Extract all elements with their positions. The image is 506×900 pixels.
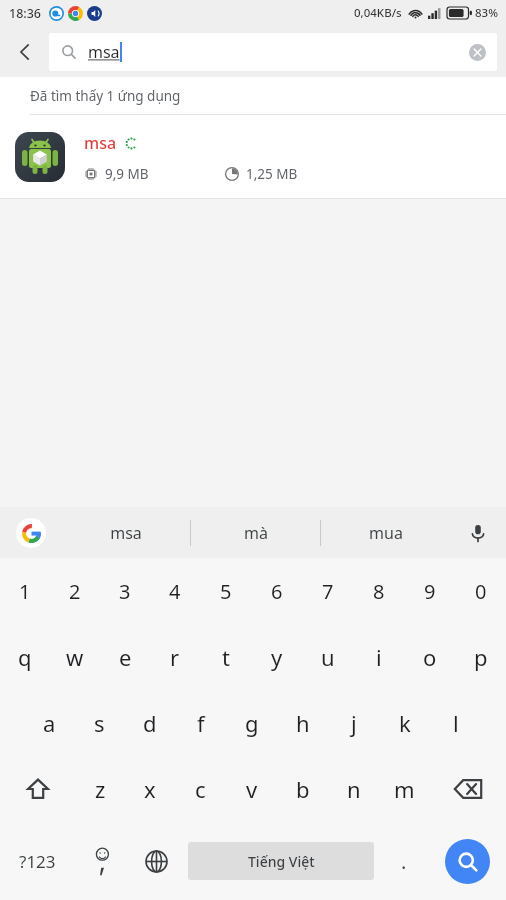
button[interactable]: 8 xyxy=(353,558,404,624)
staticText: 83% xyxy=(475,5,498,21)
button[interactable]: Search xyxy=(445,839,490,884)
staticText: msa xyxy=(110,522,142,544)
button[interactable]: 9 xyxy=(404,558,455,624)
button[interactable]: w xyxy=(50,624,100,690)
button[interactable]: k xyxy=(379,690,430,756)
staticText: a xyxy=(43,708,56,738)
staticText: 9 xyxy=(424,578,436,605)
button[interactable]: v xyxy=(226,756,277,822)
staticText: m xyxy=(394,774,415,804)
button[interactable]: s xyxy=(74,690,124,756)
button[interactable]: l xyxy=(430,690,481,756)
staticText: p xyxy=(474,642,488,672)
staticText: mà xyxy=(244,522,268,544)
staticText: 0,04KB/s xyxy=(354,5,402,21)
staticText: Đã tìm thấy 1 ứng dụng xyxy=(30,87,181,105)
button[interactable]: Emoji and comma xyxy=(75,822,129,900)
button[interactable]: p xyxy=(455,624,506,690)
staticText: u xyxy=(321,642,335,672)
staticText: Tiếng Việt xyxy=(248,852,315,871)
staticText: 18:36 xyxy=(9,5,42,22)
staticText: y xyxy=(271,642,283,672)
button[interactable]: e xyxy=(100,624,150,690)
staticText: 5 xyxy=(220,578,232,605)
button[interactable]: 4 xyxy=(150,558,200,624)
button[interactable]: u xyxy=(302,624,353,690)
button[interactable]: . xyxy=(379,822,428,900)
staticText: 9,9 MB xyxy=(105,165,149,183)
button[interactable]: b xyxy=(277,756,328,822)
staticText: 4 xyxy=(169,578,181,605)
button[interactable]: m xyxy=(379,756,430,822)
button[interactable]: 1 xyxy=(0,558,50,624)
button[interactable]: c xyxy=(175,756,226,822)
button[interactable]: 2 xyxy=(50,558,100,624)
button[interactable]: d xyxy=(124,690,175,756)
button[interactable]: g xyxy=(226,690,277,756)
staticText: q xyxy=(18,642,32,672)
button[interactable]: r xyxy=(150,624,200,690)
staticText: 0 xyxy=(475,578,487,605)
staticText: k xyxy=(399,708,411,738)
button[interactable]: z xyxy=(75,756,125,822)
button[interactable]: f xyxy=(175,690,226,756)
button[interactable]: Change language xyxy=(129,822,183,900)
button[interactable]: ?123 xyxy=(0,822,75,900)
staticText: d xyxy=(143,708,157,738)
button[interactable]: t xyxy=(200,624,251,690)
staticText: . xyxy=(401,848,407,875)
button[interactable]: Tiếng Việt xyxy=(188,842,374,880)
button[interactable]: n xyxy=(328,756,379,822)
button[interactable]: Backspace xyxy=(430,756,506,822)
staticText: 8 xyxy=(373,578,385,605)
staticText: 7 xyxy=(322,578,334,605)
staticText: r xyxy=(170,642,180,672)
staticText: 3 xyxy=(119,578,131,605)
button[interactable]: Google Search xyxy=(0,507,62,558)
button[interactable]: a xyxy=(24,690,74,756)
staticText: h xyxy=(296,708,310,738)
button[interactable]: 7 xyxy=(302,558,353,624)
button[interactable]: mà xyxy=(191,507,320,558)
button[interactable]: h xyxy=(277,690,328,756)
staticText: i xyxy=(376,642,382,672)
staticText: msa xyxy=(88,41,120,63)
button[interactable]: o xyxy=(404,624,455,690)
staticText: mua xyxy=(369,522,403,544)
staticText: c xyxy=(195,774,206,804)
staticText: g xyxy=(245,708,259,738)
staticText: ?123 xyxy=(19,850,56,873)
button[interactable]: Clear text xyxy=(460,35,494,69)
staticText: t xyxy=(222,642,230,672)
button[interactable]: msa xyxy=(62,507,190,558)
staticText: o xyxy=(423,642,437,672)
button[interactable]: mua xyxy=(321,507,450,558)
button[interactable]: x xyxy=(125,756,175,822)
button[interactable]: msa xyxy=(0,115,506,199)
button[interactable]: i xyxy=(353,624,404,690)
button[interactable]: 6 xyxy=(251,558,302,624)
button[interactable]: Shift xyxy=(0,756,75,822)
staticText: f xyxy=(197,708,205,738)
button[interactable]: Voice input xyxy=(450,507,506,558)
button[interactable]: q xyxy=(0,624,50,690)
staticText: s xyxy=(94,708,105,738)
button[interactable]: y xyxy=(251,624,302,690)
button[interactable]: j xyxy=(328,690,379,756)
staticText: b xyxy=(296,774,310,804)
staticText: e xyxy=(119,642,132,672)
button[interactable]: Back xyxy=(0,26,49,77)
staticText: n xyxy=(347,774,361,804)
button[interactable]: 5 xyxy=(200,558,251,624)
staticText: 1,25 MB xyxy=(246,165,298,183)
staticText: l xyxy=(453,708,459,738)
button[interactable]: 3 xyxy=(100,558,150,624)
staticText: j xyxy=(351,708,357,738)
staticText: 6 xyxy=(271,578,283,605)
button[interactable]: msa xyxy=(49,33,497,71)
staticText: msa xyxy=(84,132,117,154)
staticText: 2 xyxy=(69,578,81,605)
button[interactable]: 0 xyxy=(455,558,506,624)
staticText: 1 xyxy=(19,578,31,605)
staticText: x xyxy=(144,774,156,804)
